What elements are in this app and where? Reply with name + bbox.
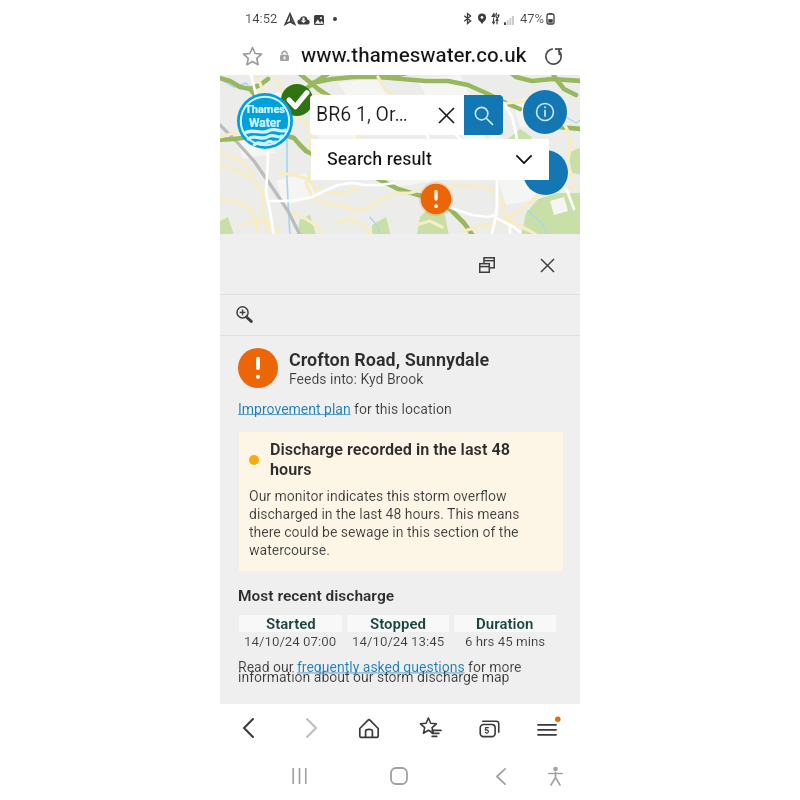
button[interactable]: Window manager (472, 250, 502, 280)
button[interactable]: Improvement plan for this location (238, 401, 452, 417)
staticText: Discharge recorded in the last 48 hours (270, 440, 525, 479)
staticText: Feeds into: Kyd Brook (289, 371, 424, 387)
button[interactable]: Search (464, 95, 503, 135)
staticText: 14:52 (245, 11, 278, 26)
button[interactable]: Zoom in (232, 303, 256, 327)
button[interactable]: Read our frequently asked questions for … (238, 659, 566, 685)
button[interactable]: Accessibility (535, 756, 575, 796)
button[interactable]: Search result (311, 139, 549, 180)
staticText: 47% (520, 11, 545, 26)
staticText: 14/10/24 13:45 (352, 634, 445, 650)
button[interactable]: My location (523, 150, 568, 195)
staticText: Our monitor indicates this storm overflo… (249, 488, 553, 558)
staticText: Most recent discharge (238, 587, 395, 605)
button[interactable]: Forward (291, 708, 331, 748)
button[interactable]: Menu (529, 708, 569, 748)
button[interactable]: Bookmarks (410, 708, 450, 748)
button[interactable]: Home (349, 708, 389, 748)
staticText: Thames (245, 103, 285, 116)
button[interactable]: Close (532, 250, 562, 280)
staticText: Started (266, 615, 316, 632)
staticText: Stopped (370, 615, 427, 632)
staticText: Duration (476, 615, 534, 632)
button[interactable]: Bookmark (238, 42, 266, 70)
staticText: Crofton Road, Sunnydale (289, 349, 490, 370)
button[interactable]: Back (228, 708, 268, 748)
staticText: Search result (327, 148, 432, 169)
button[interactable]: Home (379, 756, 419, 796)
button[interactable]: Back (481, 756, 521, 796)
button[interactable]: Clear search (435, 104, 457, 126)
button[interactable]: Information (523, 90, 567, 134)
staticText: 14/10/24 07:00 (244, 634, 337, 650)
button[interactable]: Recent apps (279, 756, 319, 796)
staticText: Water (249, 116, 281, 130)
button[interactable]: Reload (540, 43, 566, 69)
staticText: www.thameswater.co.uk (301, 43, 527, 67)
staticText: 6 hrs 45 mins (465, 634, 546, 650)
button[interactable]: Tabs (469, 708, 509, 748)
staticText: BR6 1, Or… (316, 103, 408, 126)
